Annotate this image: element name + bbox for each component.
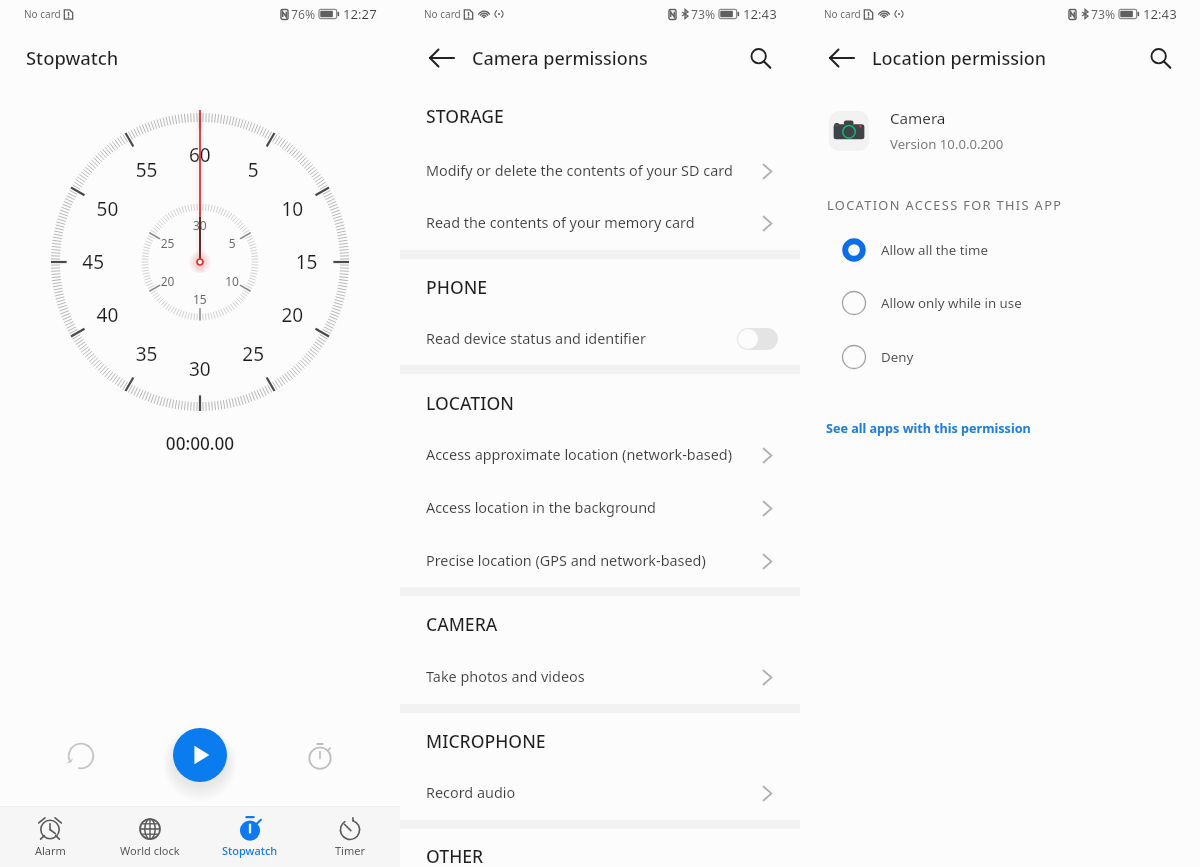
staticText: 12:43 <box>743 5 777 23</box>
staticText: No card <box>424 7 461 21</box>
staticText: Access approximate location (network-bas… <box>426 445 761 465</box>
staticText: Stopwatch <box>26 45 119 70</box>
staticText: 00:00.00 <box>0 432 400 455</box>
staticText: Camera permissions <box>472 46 648 71</box>
button[interactable]: Access approximate location (network-bas… <box>400 429 800 481</box>
button[interactable]: World clock <box>100 807 200 867</box>
staticText: PHONE <box>426 275 488 299</box>
staticText: STORAGE <box>426 104 504 128</box>
button[interactable]: Alarm <box>0 807 100 867</box>
button[interactable]: Back <box>421 37 463 79</box>
button[interactable]: Search <box>739 37 781 79</box>
staticText: Deny <box>881 348 914 366</box>
staticText: Allow only while in use <box>881 294 1022 312</box>
button[interactable]: See all apps with this permission <box>826 420 1031 437</box>
staticText: Camera <box>890 108 946 129</box>
button[interactable]: Deny <box>800 331 1200 383</box>
button[interactable]: Reset <box>58 733 103 778</box>
staticText: Take photos and videos <box>426 667 761 687</box>
button[interactable]: Stopwatch <box>200 807 300 867</box>
button[interactable]: Start <box>173 728 227 782</box>
button[interactable]: Search <box>1139 37 1181 79</box>
staticText: Timer <box>335 843 365 858</box>
staticText: LOCATION ACCESS FOR THIS APP <box>827 196 1063 213</box>
staticText: OTHER <box>426 844 484 867</box>
staticText: Version 10.0.0.200 <box>890 135 1004 153</box>
button[interactable]: Record audio <box>400 767 800 819</box>
staticText: No card <box>24 7 61 21</box>
staticText: Location permission <box>872 46 1047 71</box>
button[interactable]: Timer <box>300 807 400 867</box>
staticText: Modify or delete the contents of your SD… <box>426 161 761 181</box>
button[interactable]: Modify or delete the contents of your SD… <box>400 145 800 197</box>
staticText: Record audio <box>426 783 761 803</box>
staticText: Precise location (GPS and network-based) <box>426 551 761 571</box>
button[interactable]: Toggle <box>737 328 778 350</box>
staticText: No card <box>824 7 861 21</box>
staticText: World clock <box>120 843 180 858</box>
button[interactable]: Lap <box>297 733 342 778</box>
staticText: 73% <box>1091 6 1116 23</box>
button[interactable]: Read device status and identifier <box>400 313 800 365</box>
button[interactable]: Precise location (GPS and network-based) <box>400 535 800 587</box>
button[interactable]: Allow only while in use <box>800 277 1200 329</box>
staticText: Read the contents of your memory card <box>426 213 761 233</box>
button[interactable]: Access location in the background <box>400 482 800 534</box>
staticText: 76% <box>291 6 316 23</box>
button[interactable]: Take photos and videos <box>400 651 800 703</box>
staticText: Allow all the time <box>881 241 988 259</box>
staticText: Access location in the background <box>426 498 761 518</box>
staticText: 73% <box>691 6 716 23</box>
staticText: 12:43 <box>1143 5 1177 23</box>
button[interactable]: Read the contents of your memory card <box>400 197 800 249</box>
button[interactable]: Back <box>821 37 863 79</box>
staticText: LOCATION <box>426 391 514 415</box>
staticText: 12:27 <box>343 5 377 23</box>
button[interactable]: Allow all the time <box>800 224 1200 276</box>
staticText: Read device status and identifier <box>426 329 737 349</box>
staticText: Alarm <box>35 843 66 858</box>
staticText: MICROPHONE <box>426 729 546 753</box>
staticText: CAMERA <box>426 612 498 636</box>
staticText: Stopwatch <box>222 843 278 858</box>
